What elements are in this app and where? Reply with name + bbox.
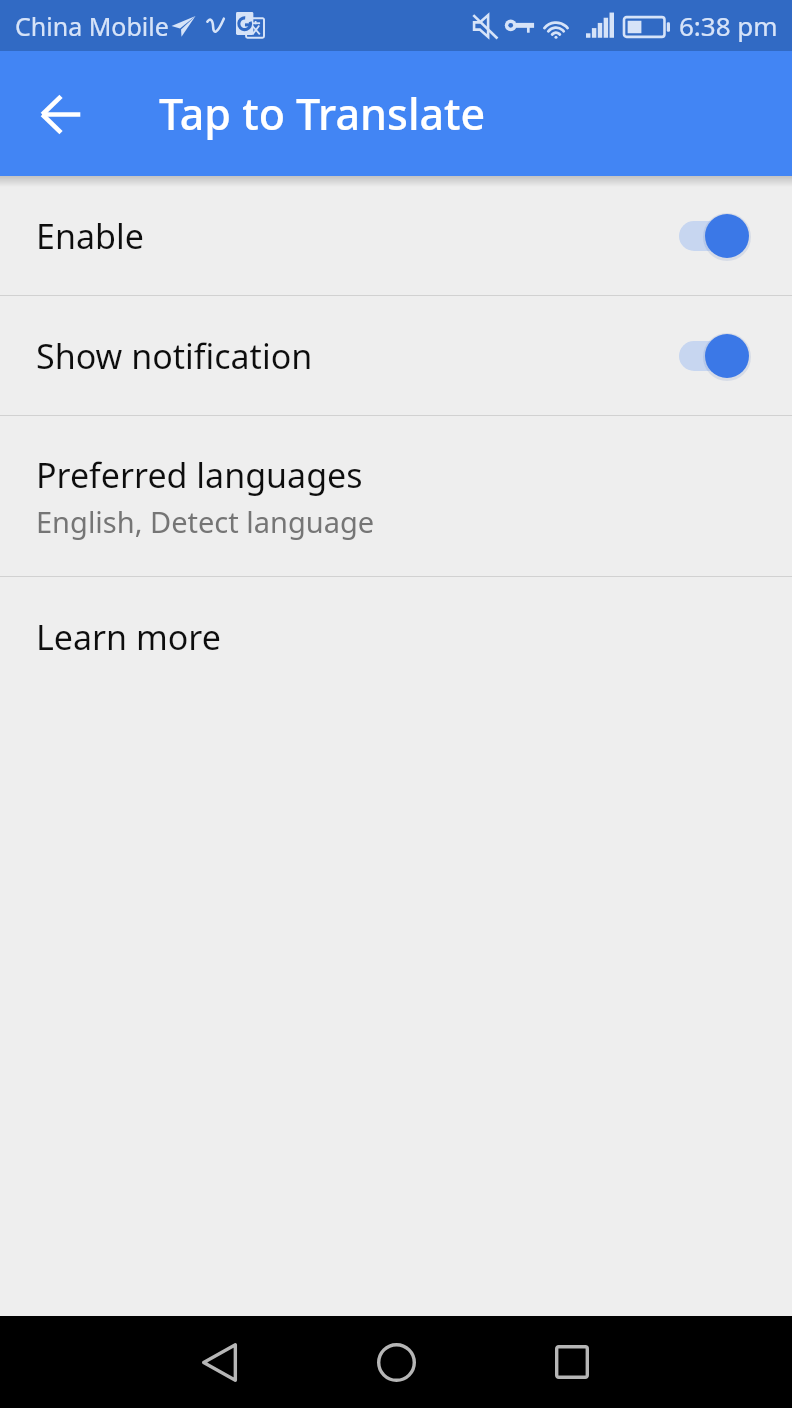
staticText: Show notification — [36, 333, 313, 379]
button[interactable]: Show notification — [0, 296, 792, 415]
staticText: Preferred languages — [36, 452, 363, 498]
staticText: Learn more — [36, 614, 221, 660]
button[interactable]: Recents — [526, 1316, 618, 1408]
staticText: Tap to Translate — [159, 84, 486, 143]
button[interactable]: Back — [26, 79, 96, 149]
button[interactable]: Back — [173, 1316, 265, 1408]
button[interactable]: Preferred languages — [0, 416, 792, 576]
staticText: 6:38 pm — [679, 8, 778, 43]
button[interactable]: Enable — [0, 176, 792, 295]
staticText: China Mobile — [15, 9, 169, 43]
button[interactable]: Toggle Show notification — [679, 332, 749, 380]
staticText: Enable — [36, 213, 144, 259]
button[interactable]: Learn more — [0, 577, 792, 696]
staticText: English, Detect language — [36, 502, 375, 541]
button[interactable]: Home — [350, 1316, 442, 1408]
button[interactable]: Toggle Enable — [679, 212, 749, 260]
